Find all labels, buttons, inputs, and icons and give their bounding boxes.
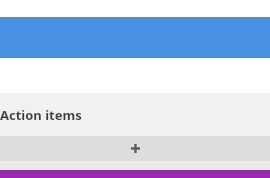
button[interactable]: Add action item <box>0 136 270 161</box>
staticText: Action items <box>0 106 82 124</box>
button[interactable]: Action items <box>0 93 270 136</box>
